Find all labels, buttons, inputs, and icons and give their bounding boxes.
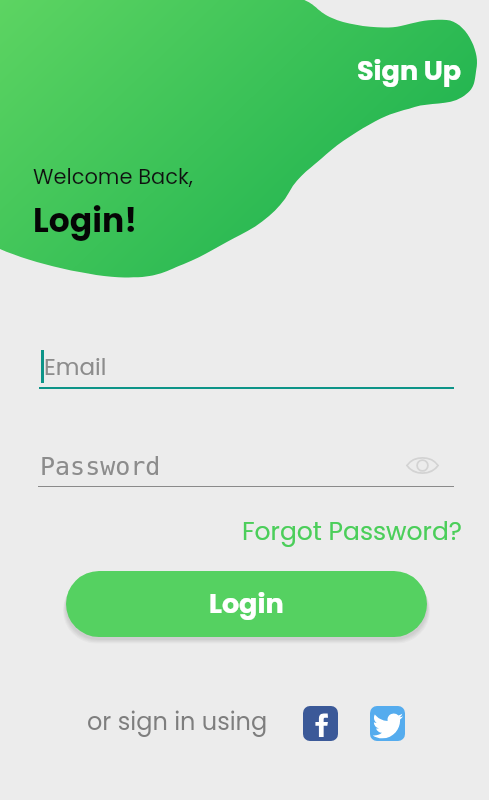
button[interactable]: Sign Up <box>346 46 473 96</box>
staticText: Welcome Back, <box>33 162 193 191</box>
staticText: Email <box>44 351 107 383</box>
staticText: Forgot Password? <box>242 514 462 549</box>
button[interactable]: Show password <box>398 448 447 482</box>
staticText: Password <box>40 452 161 481</box>
staticText: Login! <box>33 197 138 243</box>
staticText: Sign Up <box>357 52 462 90</box>
button[interactable]: Sign in with Twitter <box>370 706 405 741</box>
button[interactable]: Sign in with Facebook <box>303 706 338 741</box>
staticText: Login <box>209 585 284 623</box>
button[interactable]: Login <box>66 571 427 637</box>
staticText: or sign in using <box>87 705 268 739</box>
button[interactable]: Forgot Password? <box>233 509 471 554</box>
